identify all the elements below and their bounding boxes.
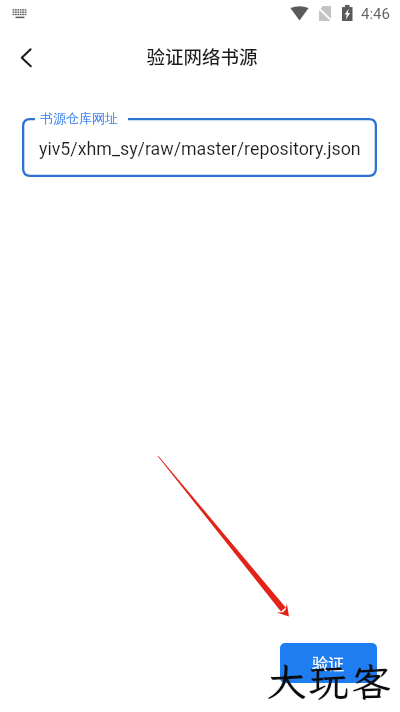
button[interactable]: yiv5/xhm_sy/raw/master/repository.json [22, 118, 377, 177]
button[interactable]: 验证 [280, 643, 377, 683]
staticText: yiv5/xhm_sy/raw/master/repository.json [39, 138, 361, 159]
staticText: 书源仓库网址 [40, 110, 118, 126]
staticText: 4:46 [361, 5, 390, 23]
staticText: 验证 [312, 651, 345, 674]
staticText: 大玩客 [267, 655, 394, 707]
staticText: 验证网络书源 [2, 43, 400, 70]
button[interactable]: Back [2, 33, 50, 81]
